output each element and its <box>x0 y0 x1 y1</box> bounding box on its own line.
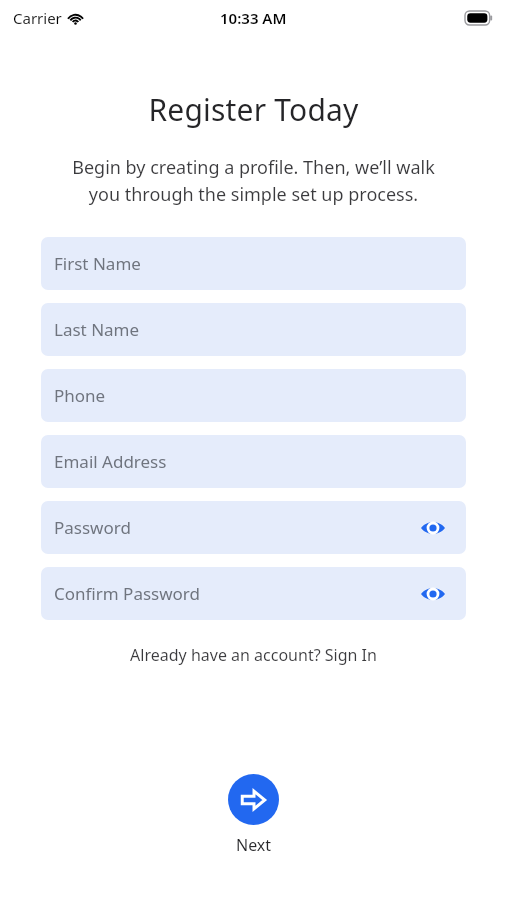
staticText: Register Today <box>0 89 507 130</box>
button[interactable]: Last Name <box>41 303 466 356</box>
button[interactable]: Show password <box>418 513 448 543</box>
staticText: Begin by creating a profile. Then, we’ll… <box>36 155 471 206</box>
button[interactable]: Email Address <box>41 435 466 488</box>
staticText: Already have an account? Sign In <box>130 644 377 666</box>
button[interactable]: Show password <box>418 579 448 609</box>
button[interactable]: Password <box>41 501 466 554</box>
staticText: Email Address <box>54 450 167 473</box>
staticText: Next <box>236 834 272 856</box>
staticText: Password <box>54 516 131 539</box>
button[interactable]: Already have an account? Sign In <box>0 644 507 666</box>
staticText: 10:33 AM <box>220 8 287 28</box>
button[interactable]: Phone <box>41 369 466 422</box>
staticText: Carrier <box>13 8 62 28</box>
staticText: Phone <box>54 384 106 407</box>
staticText: Last Name <box>54 318 140 341</box>
staticText: Confirm Password <box>54 582 200 605</box>
button[interactable]: Next <box>228 774 279 825</box>
button[interactable]: First Name <box>41 237 466 290</box>
staticText: First Name <box>54 252 141 275</box>
button[interactable]: Confirm Password <box>41 567 466 620</box>
